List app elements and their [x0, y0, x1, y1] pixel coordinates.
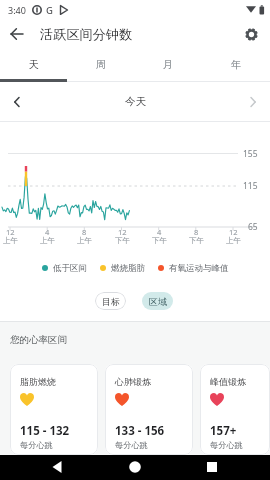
- button[interactable]: [202, 458, 222, 478]
- button[interactable]: [10, 95, 24, 109]
- staticText: 每分心跳: [210, 440, 243, 450]
- button[interactable]: 峰值锻炼: [200, 364, 270, 455]
- button[interactable]: [246, 95, 260, 109]
- staticText: 脂肪燃烧: [20, 376, 56, 387]
- staticText: 今天: [125, 95, 146, 108]
- staticText: 8: [194, 227, 199, 237]
- staticText: 您的心率区间: [10, 334, 67, 346]
- button[interactable]: [125, 457, 145, 477]
- staticText: 峰值锻炼: [210, 376, 246, 387]
- staticText: 上午: [226, 236, 241, 245]
- staticText: 115: [243, 180, 258, 192]
- button[interactable]: [244, 27, 259, 42]
- staticText: 低于区间: [53, 263, 87, 274]
- staticText: 区域: [149, 296, 167, 307]
- staticText: 年: [231, 58, 241, 71]
- staticText: 12: [6, 227, 15, 237]
- staticText: 157+: [210, 423, 237, 439]
- staticText: 下午: [189, 236, 204, 245]
- staticText: 3:40: [8, 4, 26, 16]
- button[interactable]: [9, 26, 25, 42]
- staticText: 周: [96, 58, 106, 71]
- staticText: 上午: [40, 236, 55, 245]
- staticText: 燃烧脂肪: [111, 263, 145, 274]
- staticText: 65: [248, 221, 258, 233]
- staticText: 133 - 156: [115, 423, 165, 439]
- staticText: 活跃区间分钟数: [40, 26, 133, 43]
- staticText: 8: [82, 227, 87, 237]
- staticText: 4: [45, 227, 50, 237]
- button[interactable]: 脂肪燃烧: [10, 364, 98, 455]
- button[interactable]: 周: [67, 48, 134, 82]
- staticText: 每分心跳: [20, 440, 53, 450]
- button[interactable]: 月: [134, 48, 202, 82]
- staticText: 12: [229, 227, 238, 237]
- staticText: 12: [118, 227, 127, 237]
- staticText: 有氧运动与峰值: [169, 263, 229, 274]
- staticText: 心肺锻炼: [115, 376, 151, 387]
- staticText: 上午: [77, 236, 92, 245]
- staticText: G: [46, 4, 53, 17]
- staticText: 下午: [115, 236, 130, 245]
- button[interactable]: 年: [202, 48, 270, 82]
- staticText: 下午: [152, 236, 167, 245]
- button[interactable]: 目标: [95, 292, 126, 310]
- staticText: 115 - 132: [20, 423, 70, 439]
- button[interactable]: 天: [0, 48, 67, 82]
- button[interactable]: 区域: [142, 292, 173, 310]
- button[interactable]: [47, 458, 67, 478]
- staticText: 155: [243, 148, 258, 160]
- staticText: 月: [163, 58, 173, 71]
- button[interactable]: 心肺锻炼: [105, 364, 193, 455]
- staticText: 上午: [3, 236, 18, 245]
- staticText: 目标: [102, 296, 120, 307]
- staticText: 天: [29, 58, 39, 71]
- staticText: 每分心跳: [115, 440, 148, 450]
- staticText: 4: [157, 227, 162, 237]
